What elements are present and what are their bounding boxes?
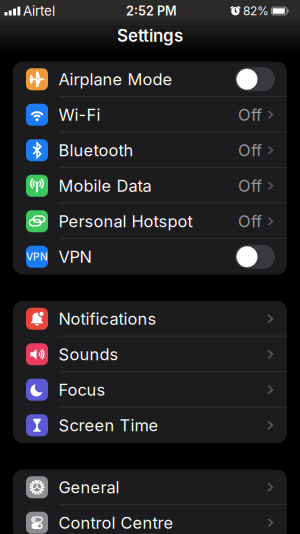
staticText: Settings xyxy=(117,25,183,46)
staticText: Airtel xyxy=(23,3,55,19)
button[interactable]: VPN xyxy=(235,245,287,269)
staticText: Wi-Fi xyxy=(58,105,100,125)
staticText: Off xyxy=(238,140,262,160)
staticText: Screen Time xyxy=(58,415,158,435)
staticText: VPN xyxy=(58,247,91,267)
button[interactable]: Sounds xyxy=(13,336,287,372)
staticText: Bluetooth xyxy=(58,140,133,160)
button[interactable]: Focus xyxy=(13,372,287,407)
button[interactable]: Screen Time xyxy=(13,407,287,443)
staticText: Personal Hotspot xyxy=(58,211,192,231)
staticText: 82% xyxy=(243,4,269,18)
staticText: Off xyxy=(238,105,262,125)
button[interactable]: Wi-Fi xyxy=(13,97,287,132)
staticText: Airplane Mode xyxy=(58,69,172,89)
button[interactable]: Airplane Mode xyxy=(235,67,287,91)
button[interactable]: Personal Hotspot xyxy=(13,203,287,239)
staticText: Sounds xyxy=(58,344,118,364)
button[interactable]: General xyxy=(13,469,287,505)
button[interactable]: Control Centre xyxy=(13,505,287,534)
button[interactable]: Bluetooth xyxy=(13,132,287,168)
staticText: 2:52 PM xyxy=(126,3,177,19)
staticText: Focus xyxy=(58,380,105,400)
staticText: General xyxy=(58,477,119,497)
staticText: Mobile Data xyxy=(58,176,151,196)
staticText: Off xyxy=(238,176,262,196)
staticText: Off xyxy=(238,211,262,231)
button[interactable]: Notifications xyxy=(13,301,287,336)
button[interactable]: Mobile Data xyxy=(13,168,287,203)
staticText: Control Centre xyxy=(58,513,173,533)
staticText: Notifications xyxy=(58,309,156,329)
staticText: VPN xyxy=(26,251,48,263)
